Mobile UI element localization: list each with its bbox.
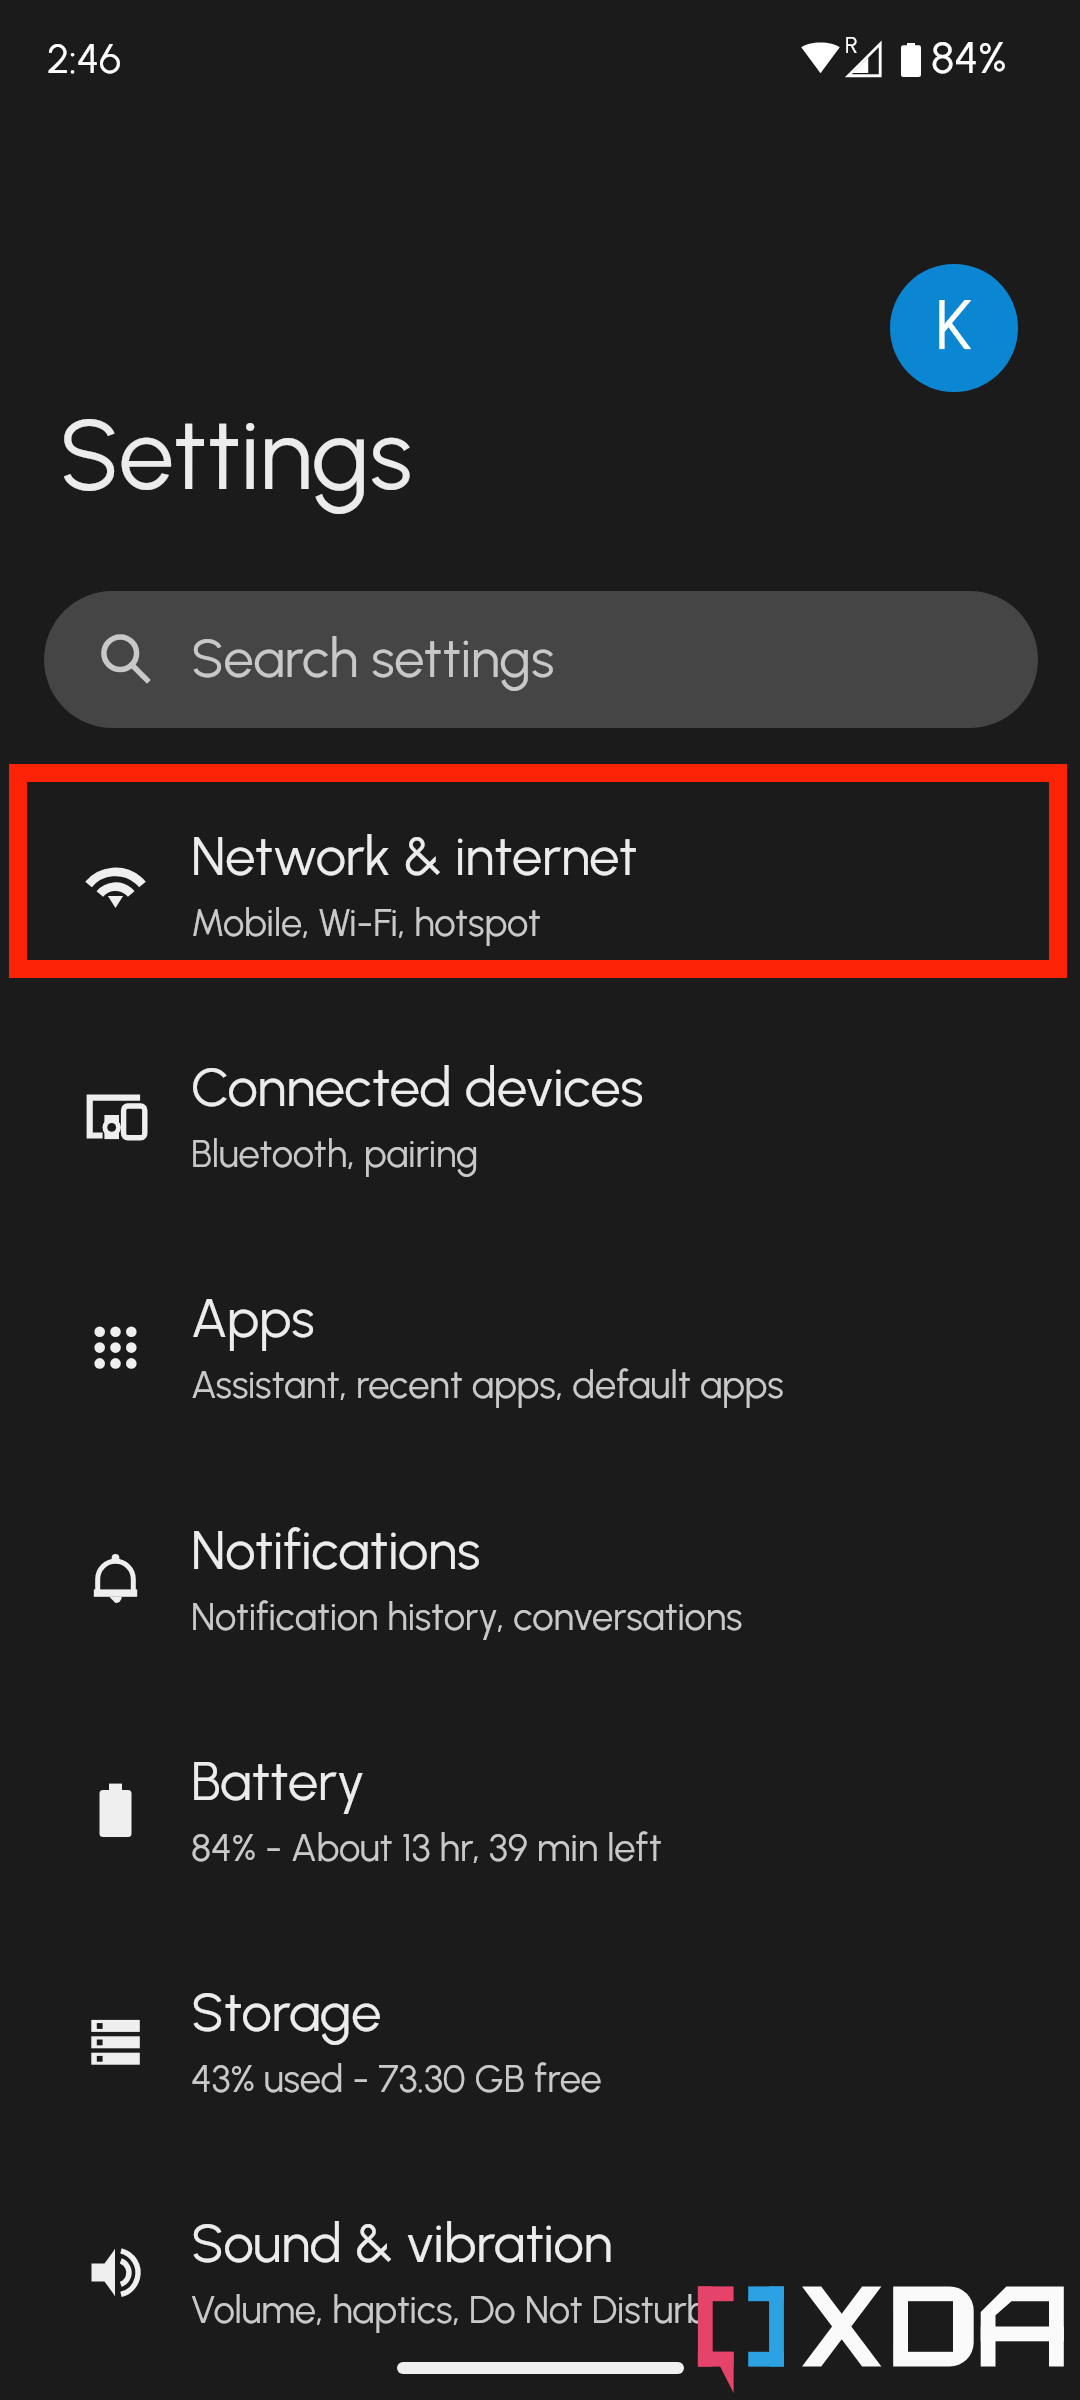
button[interactable]: Account (890, 264, 1018, 392)
staticText: 43% used - 73.30 GB free (191, 2056, 602, 2102)
staticText: Storage (191, 1980, 382, 2045)
staticText: Apps (191, 1286, 315, 1351)
button[interactable]: Notifications (0, 1434, 1080, 1665)
staticText: Network & internet (191, 824, 638, 889)
staticText: Battery (191, 1749, 365, 1814)
staticText: Notification history, conversations (191, 1594, 743, 1640)
button[interactable]: Battery (0, 1665, 1080, 1896)
staticText: Volume, haptics, Do Not Disturb (191, 2287, 710, 2333)
staticText: Notifications (191, 1518, 481, 1583)
button[interactable]: Network & internet (0, 740, 1080, 971)
staticText: 84% (931, 31, 1007, 84)
staticText: Sound & vibration (191, 2211, 613, 2276)
staticText: 84% - About 13 hr, 39 min left (191, 1825, 662, 1871)
staticText: Mobile, Wi-Fi, hotspot (191, 900, 541, 946)
button[interactable]: Sound & vibration (0, 2127, 1080, 2358)
staticText: R (845, 31, 858, 59)
staticText: Assistant, recent apps, default apps (191, 1362, 784, 1408)
button[interactable]: Connected devices (0, 971, 1080, 1202)
staticText: Search settings (191, 626, 555, 691)
button[interactable]: Search settings (44, 591, 1038, 728)
staticText: 2:46 (47, 34, 122, 83)
staticText: Connected devices (191, 1055, 644, 1120)
staticText: K (935, 282, 973, 366)
staticText: Bluetooth, pairing (191, 1131, 479, 1177)
staticText: Settings (59, 395, 413, 514)
button[interactable]: Storage (0, 1896, 1080, 2127)
button[interactable]: Apps (0, 1202, 1080, 1433)
